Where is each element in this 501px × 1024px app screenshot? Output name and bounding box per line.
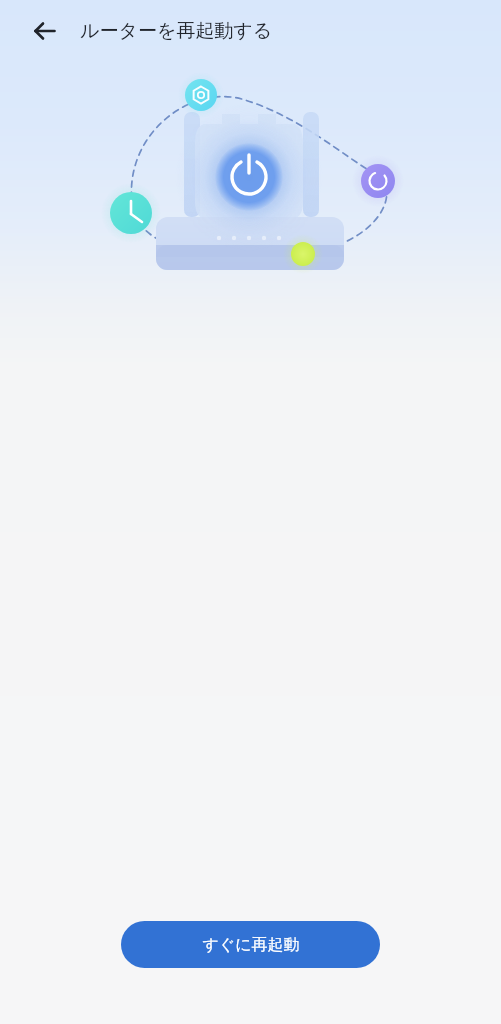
staticText: すぐに再起動 [202, 935, 300, 955]
button[interactable]: すぐに再起動 [121, 921, 380, 968]
staticText: ルーターを再起動する [80, 19, 273, 43]
button[interactable]: Back [22, 8, 68, 54]
